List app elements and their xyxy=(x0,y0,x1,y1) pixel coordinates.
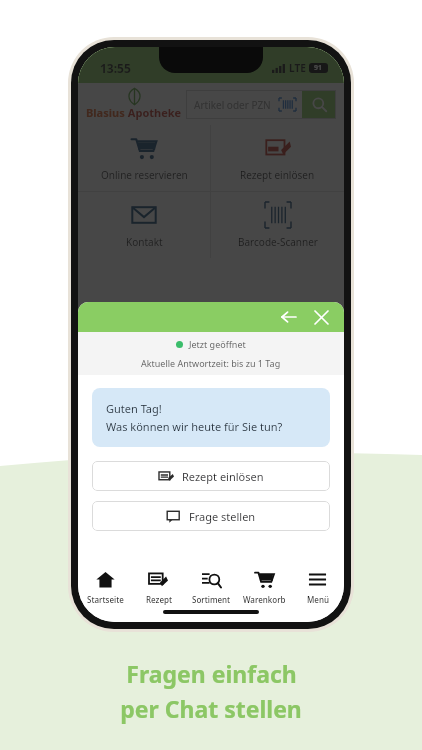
button[interactable]: Rezept xyxy=(132,570,185,622)
staticText: Frage stellen xyxy=(189,509,256,524)
button[interactable]: Rezept einlösen xyxy=(92,461,330,491)
button[interactable]: Sortiment xyxy=(185,570,238,622)
staticText: Rezept einlösen xyxy=(240,168,315,182)
staticText: Barcode-Scanner xyxy=(238,235,318,249)
button[interactable]: Online reservieren xyxy=(78,125,210,191)
staticText: Rezept einlösen xyxy=(182,469,264,484)
staticText: Online reservieren xyxy=(101,168,188,182)
button[interactable]: Kontakt xyxy=(78,192,210,258)
staticText: Rezept xyxy=(146,594,172,605)
staticText: Apotheke xyxy=(125,105,182,120)
staticText: Sortiment xyxy=(192,594,231,605)
button[interactable]: Schließen xyxy=(310,306,332,328)
staticText: per Chat stellen xyxy=(120,693,302,724)
staticText: Guten Tag! xyxy=(106,401,162,416)
button[interactable]: Suchen xyxy=(302,90,336,119)
staticText: Was können wir heute für Sie tun? xyxy=(106,419,283,434)
button[interactable]: Warenkorb xyxy=(238,570,291,622)
button[interactable]: Zurück xyxy=(278,306,300,328)
staticText: 13:55 xyxy=(100,60,131,76)
staticText: Blasius xyxy=(86,105,125,120)
button[interactable]: Barcode-Scanner xyxy=(211,192,344,258)
staticText: iPhone and its design are trademarks of … xyxy=(140,384,148,584)
staticText: Menü xyxy=(307,594,329,605)
button[interactable]: Frage stellen xyxy=(92,501,330,531)
staticText: 91 xyxy=(314,63,323,73)
staticText: Startseite xyxy=(87,594,124,605)
button[interactable]: Rezept einlösen xyxy=(211,125,344,191)
staticText: Kontakt xyxy=(126,235,163,249)
button[interactable]: Menü xyxy=(291,570,344,622)
staticText: Aktuelle Antwortzeit: bis zu 1 Tag xyxy=(141,357,281,369)
staticText: Artikel oder PZN xyxy=(194,98,279,112)
staticText: LTE xyxy=(289,61,306,75)
button[interactable]: Startseite xyxy=(78,570,132,622)
staticText: Warenkorb xyxy=(243,594,286,605)
staticText: Jetzt geöffnet xyxy=(189,338,246,350)
staticText: Fragen einfach xyxy=(126,658,297,689)
